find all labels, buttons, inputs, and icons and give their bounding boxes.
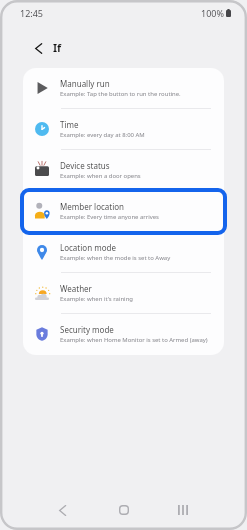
button[interactable]: Home — [110, 497, 138, 523]
staticText: Time — [60, 119, 79, 130]
staticText: Example: every day at 8:00 AM — [60, 131, 145, 139]
staticText: If — [53, 41, 62, 55]
staticText: Example: when Home Monitor is set to Arm… — [60, 336, 208, 344]
button[interactable]: Security mode — [23, 314, 224, 355]
button[interactable]: Recents — [169, 497, 197, 523]
staticText: Member location — [60, 201, 125, 212]
staticText: Example: when it's raining — [60, 295, 133, 303]
staticText: Manually run — [60, 78, 110, 89]
button[interactable]: Manually run — [23, 68, 224, 109]
button[interactable]: Device status — [23, 150, 224, 191]
button[interactable]: Member location — [23, 191, 224, 232]
button[interactable]: Weather — [23, 273, 224, 314]
staticText: 100% — [201, 7, 224, 19]
button[interactable]: Location mode — [23, 232, 224, 273]
staticText: Example: when the mode is set to Away — [60, 254, 171, 262]
staticText: Example: when a door opens — [60, 172, 141, 180]
staticText: Weather — [60, 283, 92, 294]
staticText: 12:45 — [20, 7, 44, 19]
button[interactable]: Navigate up — [28, 38, 48, 58]
staticText: Location mode — [60, 242, 116, 253]
staticText: Example: Every time anyone arrives — [60, 213, 159, 221]
staticText: Device status — [60, 160, 110, 171]
button[interactable]: Back — [48, 497, 76, 523]
staticText: Example: Tap the button to run the routi… — [60, 90, 181, 98]
staticText: Security mode — [60, 324, 114, 335]
button[interactable]: Time — [23, 109, 224, 150]
